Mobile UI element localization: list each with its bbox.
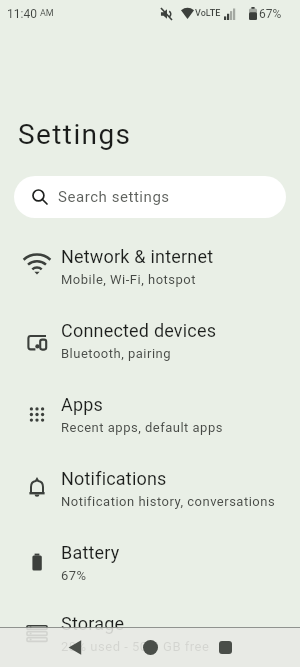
staticText: Storage xyxy=(61,613,125,634)
button[interactable] xyxy=(210,632,240,662)
button[interactable]: Battery xyxy=(0,525,300,599)
staticText: Apps xyxy=(61,394,104,415)
button[interactable]: Search settings xyxy=(14,176,286,218)
staticText: Mobile, Wi-Fi, hotspot xyxy=(61,272,196,287)
button[interactable] xyxy=(135,632,165,662)
staticText: 67% xyxy=(61,568,87,583)
staticText: 28% used - 50.0 GB free xyxy=(61,639,210,654)
staticText: Network & internet xyxy=(61,246,214,267)
staticText: Connected devices xyxy=(61,320,217,341)
staticText: Notification history, conversations xyxy=(61,494,276,509)
staticText: Bluetooth, pairing xyxy=(61,346,172,361)
button[interactable]: Network & internet xyxy=(0,229,300,303)
staticText: 67% xyxy=(259,7,282,21)
staticText: Settings xyxy=(18,118,132,151)
button[interactable]: Connected devices xyxy=(0,303,300,377)
button[interactable]: Apps xyxy=(0,377,300,451)
button[interactable] xyxy=(60,632,90,662)
button[interactable]: Notifications xyxy=(0,451,300,525)
staticText: Recent apps, default apps xyxy=(61,420,223,435)
staticText: VoLTE xyxy=(195,8,221,19)
staticText: AM xyxy=(40,8,54,19)
staticText: 11:40 xyxy=(7,7,37,21)
button[interactable]: Storage xyxy=(0,599,300,667)
staticText: Search settings xyxy=(58,188,170,206)
staticText: Battery xyxy=(61,542,120,563)
staticText: Notifications xyxy=(61,468,167,489)
